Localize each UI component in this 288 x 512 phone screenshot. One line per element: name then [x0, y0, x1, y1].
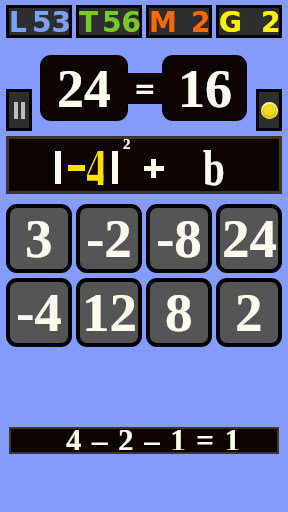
button[interactable]: -2: [80, 208, 138, 269]
staticText: 16: [178, 59, 232, 119]
button[interactable]: 8: [150, 282, 208, 343]
button[interactable]: Pause: [9, 92, 29, 128]
staticText: 2: [261, 6, 281, 33]
button[interactable]: 3: [10, 208, 68, 269]
button[interactable]: [11, 429, 277, 452]
staticText: 24: [57, 59, 111, 119]
staticText: -2: [86, 208, 132, 269]
button[interactable]: -8: [150, 208, 208, 269]
staticText: 24: [222, 208, 277, 269]
button[interactable]: 12: [80, 282, 138, 343]
button[interactable]: 2: [220, 282, 278, 343]
button[interactable]: T: [79, 8, 139, 35]
button[interactable]: G: [219, 8, 279, 35]
staticText: -8: [156, 208, 202, 269]
staticText: 56: [102, 6, 141, 33]
button[interactable]: -4: [10, 282, 68, 343]
staticText: b: [203, 140, 225, 195]
staticText: 2: [123, 136, 131, 153]
staticText: 3: [25, 208, 53, 269]
button[interactable]: Coins: [259, 92, 279, 128]
button[interactable]: [9, 139, 279, 191]
staticText: T: [79, 6, 99, 33]
staticText: 4 – 2 – 1 = 1: [66, 423, 242, 450]
staticText: 53: [32, 6, 71, 33]
staticText: 12: [82, 282, 137, 343]
staticText: L: [9, 6, 27, 33]
staticText: 2: [235, 282, 263, 343]
staticText: -4: [16, 282, 62, 343]
staticText: 8: [165, 282, 193, 343]
button[interactable]: L: [9, 8, 69, 35]
staticText: M: [149, 6, 177, 33]
button[interactable]: M: [149, 8, 209, 35]
staticText: 2: [191, 6, 211, 33]
staticText: G: [219, 6, 242, 33]
button[interactable]: 24: [220, 208, 278, 269]
staticText: =: [134, 74, 156, 104]
